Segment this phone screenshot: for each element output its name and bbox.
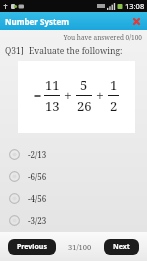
staticText: 13: [45, 97, 60, 115]
button[interactable]: -6/56: [0, 165, 147, 187]
staticText: Number System: [5, 16, 70, 27]
staticText: 26: [77, 97, 92, 115]
staticText: -3/23: [28, 215, 47, 226]
button[interactable]: Previous: [8, 239, 56, 255]
staticText: 2: [110, 97, 118, 115]
staticText: 11: [45, 76, 60, 94]
staticText: -6/56: [28, 171, 47, 182]
button[interactable]: Close: [130, 15, 142, 27]
staticText: Previous: [17, 242, 47, 252]
staticText: +: [64, 86, 72, 105]
staticText: 31/100: [68, 242, 92, 252]
staticText: Q31]: [5, 45, 24, 57]
staticText: -4/56: [28, 193, 47, 204]
button[interactable]: -2/13: [0, 143, 147, 165]
staticText: 13:08: [125, 1, 145, 11]
button[interactable]: Next: [104, 239, 139, 255]
button[interactable]: -3/23: [0, 209, 147, 231]
staticText: 5: [80, 76, 88, 94]
staticText: +: [96, 86, 104, 105]
staticText: -2/13: [28, 149, 47, 160]
staticText: You have answered 0/100: [0, 33, 142, 42]
staticText: Evaluate the following:: [29, 45, 123, 57]
staticText: Next: [113, 242, 130, 252]
staticText: 1: [110, 76, 118, 94]
button[interactable]: -4/56: [0, 187, 147, 209]
